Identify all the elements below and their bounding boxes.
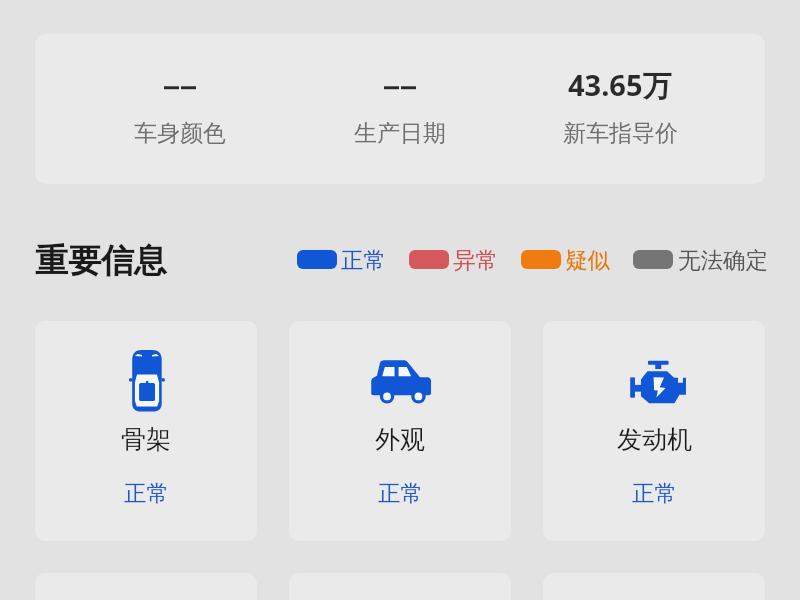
staticText: 新车指导价 (563, 119, 678, 148)
staticText: 43.65万 (568, 65, 672, 105)
staticText: 外观 (375, 424, 425, 455)
staticText: 车身颜色 (134, 119, 226, 148)
staticText: 正常 (124, 479, 169, 507)
button[interactable]: 骨架 正常 (35, 321, 257, 541)
button[interactable]: 外观 正常 (289, 321, 511, 541)
staticText: 正常 (341, 246, 386, 274)
staticText: 重要信息 (35, 240, 167, 282)
staticText: 发动机 (617, 424, 692, 455)
staticText: 正常 (378, 479, 423, 507)
staticText: 异常 (453, 246, 498, 274)
staticText: 生产日期 (354, 119, 446, 148)
staticText: 骨架 (121, 424, 171, 455)
staticText: 正常 (632, 479, 677, 507)
staticText: 疑似 (565, 246, 610, 274)
button[interactable]: 发动机 正常 (543, 321, 765, 541)
staticText: 无法确定 (678, 246, 768, 274)
